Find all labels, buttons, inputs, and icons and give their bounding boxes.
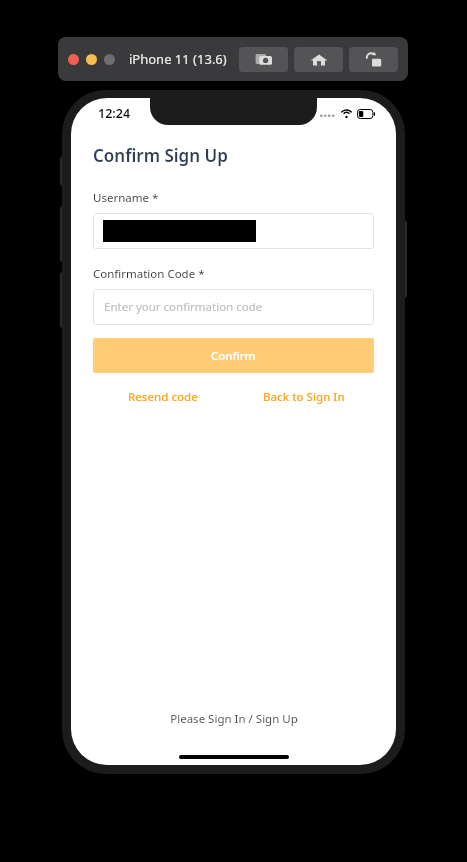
staticText: iPhone 11 (13.6) [129, 50, 227, 68]
button[interactable]: Screenshot [239, 47, 288, 72]
staticText: Confirm [211, 348, 256, 364]
staticText: Back to Sign In [263, 389, 345, 405]
button[interactable]: Please Sign In / Sign Up [71, 711, 396, 727]
staticText: Enter your confirmation code [104, 299, 263, 315]
button[interactable]: Maximize [104, 54, 115, 65]
button[interactable]: Confirm [93, 338, 374, 373]
button[interactable]: Minimize [86, 54, 97, 65]
button[interactable]: Enter your confirmation code [93, 289, 374, 325]
button[interactable]: Rotate [349, 47, 398, 72]
staticText: 12:24 [98, 105, 131, 122]
staticText: Confirmation Code * [93, 266, 205, 282]
staticText: Confirm Sign Up [93, 144, 228, 167]
staticText: Please Sign In / Sign Up [170, 711, 298, 727]
button[interactable]: Home [294, 47, 343, 72]
staticText: Username * [93, 190, 159, 206]
button[interactable] [93, 213, 374, 249]
button[interactable]: Back to Sign In [233, 389, 374, 405]
staticText: Resend code [128, 389, 198, 405]
button[interactable]: Resend code [93, 389, 233, 405]
button[interactable]: Close [68, 54, 79, 65]
